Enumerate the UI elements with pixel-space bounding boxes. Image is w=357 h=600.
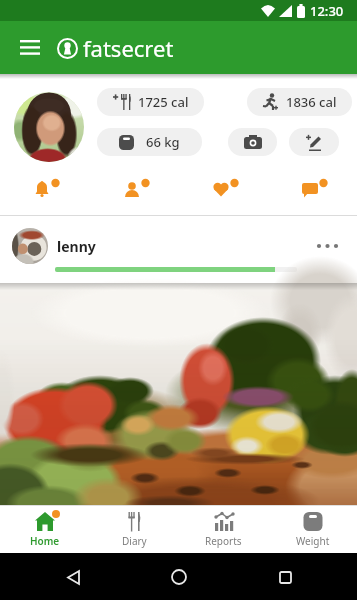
button[interactable]	[14, 92, 84, 162]
staticText: Weight	[296, 534, 330, 548]
button[interactable]: 1725 cal	[97, 88, 204, 116]
button[interactable]: Diary	[90, 506, 179, 553]
button[interactable]	[268, 178, 357, 202]
button[interactable]	[289, 128, 339, 156]
button[interactable]	[0, 178, 90, 202]
staticText: Reports	[205, 534, 242, 548]
button[interactable]	[90, 178, 179, 202]
button[interactable]	[0, 283, 357, 505]
staticText: Diary	[122, 534, 147, 548]
staticText: 1725 cal	[138, 93, 189, 111]
button[interactable]: Reports	[179, 506, 268, 553]
button[interactable]	[164, 562, 194, 592]
button[interactable]	[270, 562, 300, 592]
staticText: 66 kg	[146, 133, 180, 151]
button[interactable]: lenny	[0, 216, 357, 283]
button[interactable]: fatsecret	[57, 33, 174, 63]
staticText: 1836 cal	[286, 93, 337, 111]
staticText: 12:30	[310, 2, 344, 20]
button[interactable]: 1836 cal	[247, 88, 352, 116]
button[interactable]	[18, 36, 42, 60]
staticText: lenny	[57, 237, 96, 256]
staticText: fatsecret	[83, 33, 174, 63]
button[interactable]	[179, 178, 268, 202]
button[interactable]: 66 kg	[97, 128, 202, 156]
button[interactable]	[228, 128, 277, 156]
staticText: Home	[30, 534, 60, 548]
button[interactable]: Weight	[268, 506, 357, 553]
button[interactable]: Home	[0, 506, 90, 553]
button[interactable]	[58, 562, 88, 592]
